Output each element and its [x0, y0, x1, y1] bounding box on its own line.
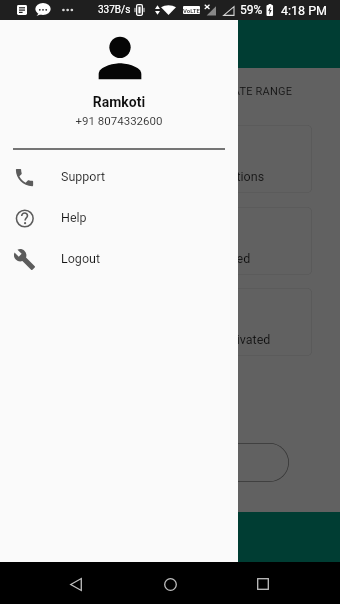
button[interactable]: Back	[54, 562, 98, 604]
button[interactable]: Help	[0, 197, 238, 238]
button[interactable]: Activated	[16, 288, 312, 356]
button[interactable]	[130, 443, 289, 482]
staticText: 59%	[240, 3, 263, 17]
staticText: Logout	[61, 251, 100, 266]
button[interactable]: Recent apps	[241, 562, 285, 604]
staticText: Redeemed	[191, 251, 251, 266]
button[interactable]: Home	[148, 562, 192, 604]
staticText: SELECT DATE RANGE	[183, 85, 293, 98]
staticText: +91 8074332600	[0, 114, 238, 127]
button[interactable]: Transactions	[16, 125, 312, 193]
staticText: VoLTE	[183, 7, 200, 14]
staticText: 4:18 PM	[281, 3, 328, 18]
staticText: Help	[61, 210, 87, 225]
staticText: 337B/s	[98, 4, 131, 16]
staticText: Transactions	[192, 169, 265, 184]
button[interactable]: Support	[0, 156, 238, 197]
button[interactable]: Redeemed	[16, 207, 312, 275]
button[interactable]: Logout	[0, 238, 238, 279]
staticText: Activated	[218, 332, 271, 347]
staticText: Support	[61, 169, 106, 184]
staticText: Ramkoti	[0, 94, 238, 110]
